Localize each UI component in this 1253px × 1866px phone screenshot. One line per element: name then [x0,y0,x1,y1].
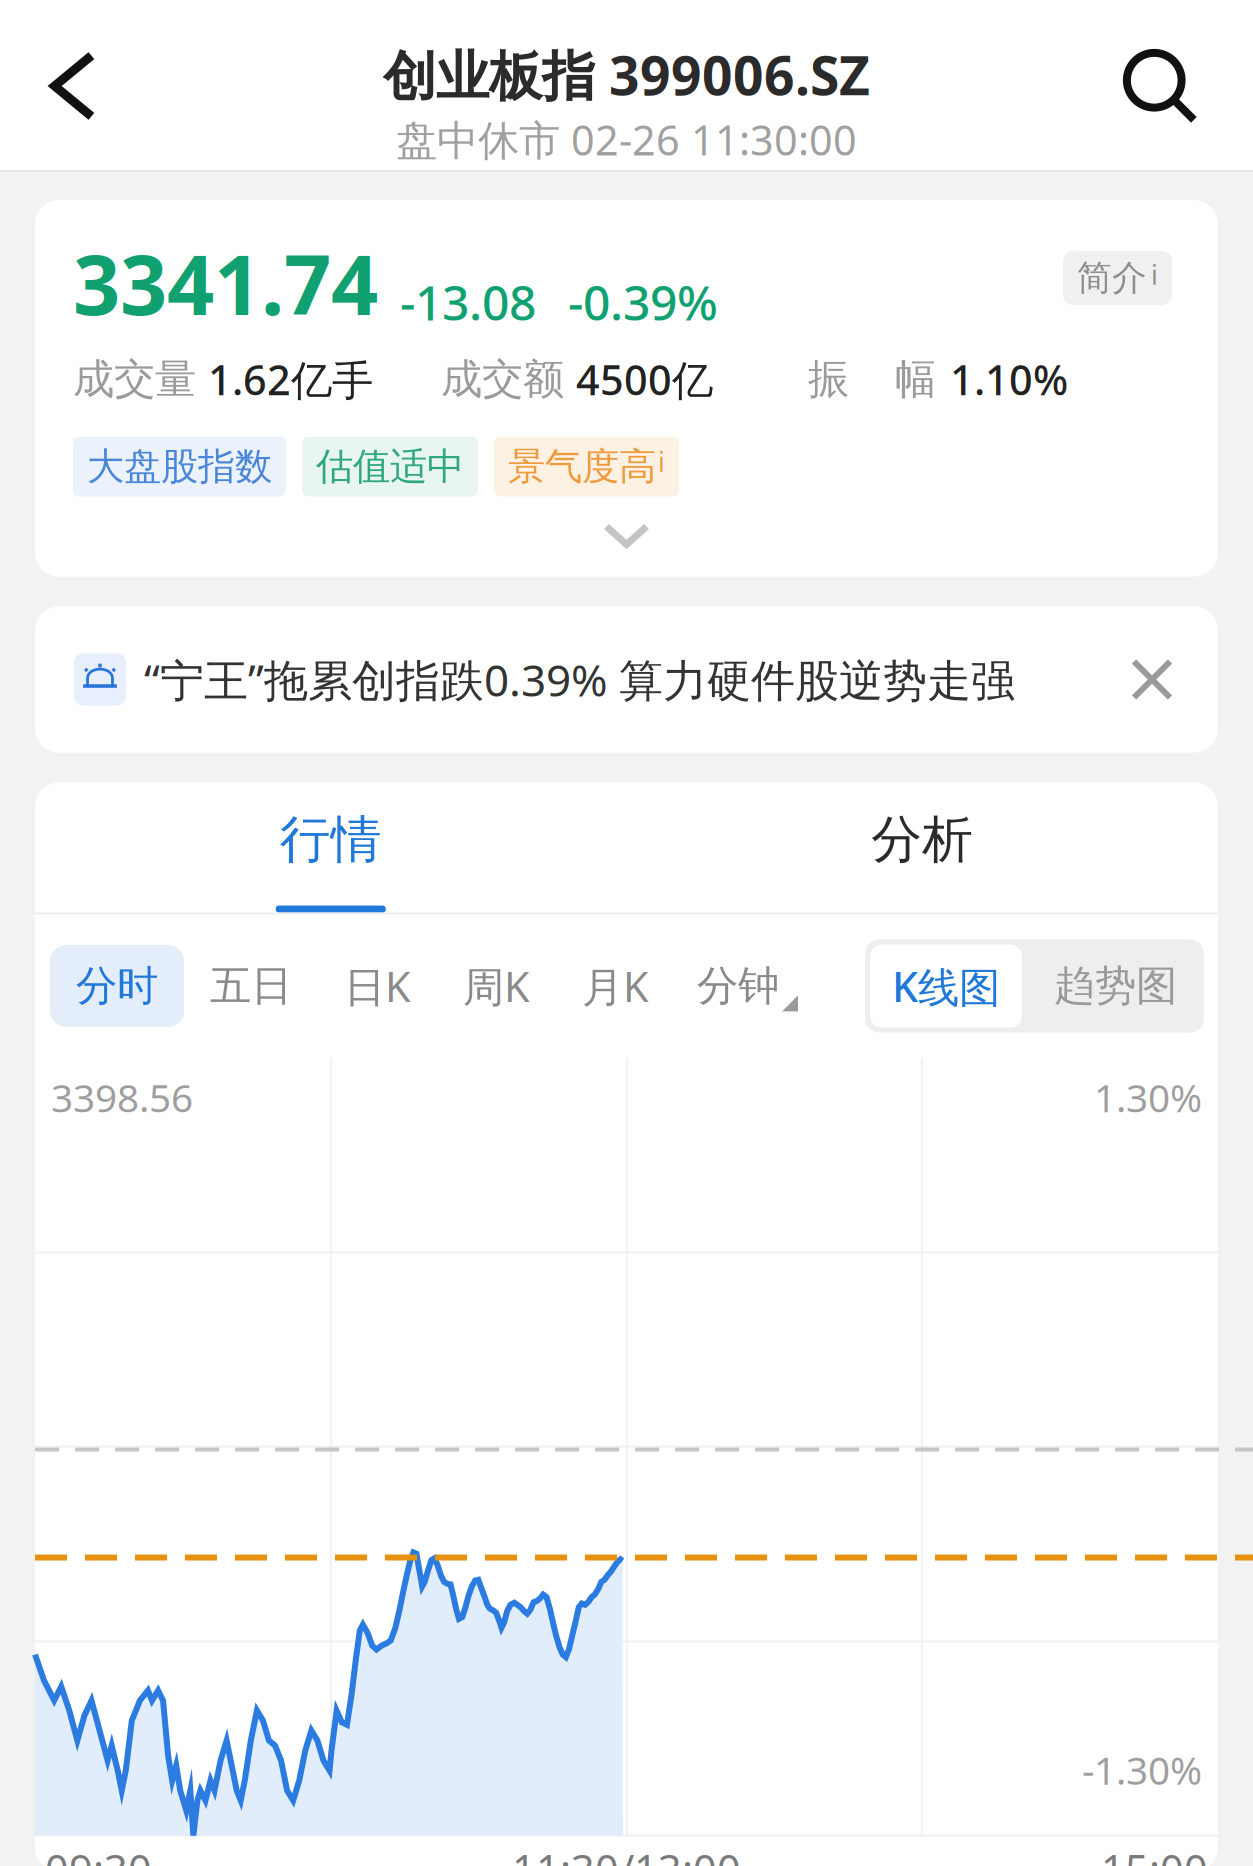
staticText: 景气度高 [508,444,656,490]
staticText: 日K [344,959,411,1013]
staticText: 分钟 [697,961,779,1011]
staticText: 振 [808,354,849,405]
staticText: 09:30 [45,1841,152,1866]
staticText: 大盘股指数 [87,444,272,490]
staticText: -1.30% [1082,1744,1202,1795]
button[interactable]: 简介 [1063,251,1172,305]
staticText: 分析 [871,808,973,871]
staticText: 4500亿 [576,352,713,407]
staticText: 3341.74 [73,228,378,338]
button[interactable]: “宁王”拖累创指跌0.39% 算力硬件股逆势走强 [35,606,1218,752]
button[interactable]: 分钟 [675,949,820,1023]
staticText: 3398.56 [51,1071,193,1123]
button[interactable]: 分时 [50,945,184,1027]
staticText: 月K [582,959,649,1013]
button[interactable]: 月K [556,947,675,1025]
staticText: 1.30% [1094,1071,1202,1123]
button[interactable]: Expand [594,514,658,556]
staticText: 估值适中 [316,444,464,490]
staticText: 成交额 [441,354,564,405]
staticText: 简介 [1077,257,1147,299]
staticText: “宁王”拖累创指跌0.39% 算力硬件股逆势走强 [144,650,1015,709]
staticText: 行情 [280,808,382,871]
staticText: -13.08 [400,270,536,334]
staticText: 趋势图 [1054,961,1177,1011]
button[interactable]: Search [1104,30,1227,142]
staticText: 成交量 [73,354,196,405]
button[interactable]: 日K [318,947,437,1025]
staticText: 15:00 [1101,1841,1208,1866]
button[interactable]: 行情 [35,782,626,912]
staticText: 周K [463,959,530,1013]
staticText: 创业板指 399006.SZ [383,39,870,110]
staticText: -0.39% [568,270,718,334]
button[interactable]: 周K [437,947,556,1025]
button[interactable]: K线图 [865,939,1027,1033]
button[interactable]: 分析 [626,782,1218,912]
staticText: 幅 [895,354,936,405]
staticText: 分时 [76,961,158,1011]
button[interactable]: Back [26,33,120,139]
staticText: i [1151,257,1158,292]
staticText: 1.62亿手 [208,352,373,407]
button[interactable]: 五日 [184,949,318,1023]
button[interactable]: 趋势图 [1027,942,1204,1030]
staticText: 11:30/13:00 [512,1841,741,1866]
staticText: i [658,444,665,479]
staticText: 盘中休市 02-26 11:30:00 [396,112,857,167]
staticText: K线图 [892,958,1000,1014]
staticText: 五日 [210,961,292,1011]
staticText: 1.10% [950,352,1068,407]
